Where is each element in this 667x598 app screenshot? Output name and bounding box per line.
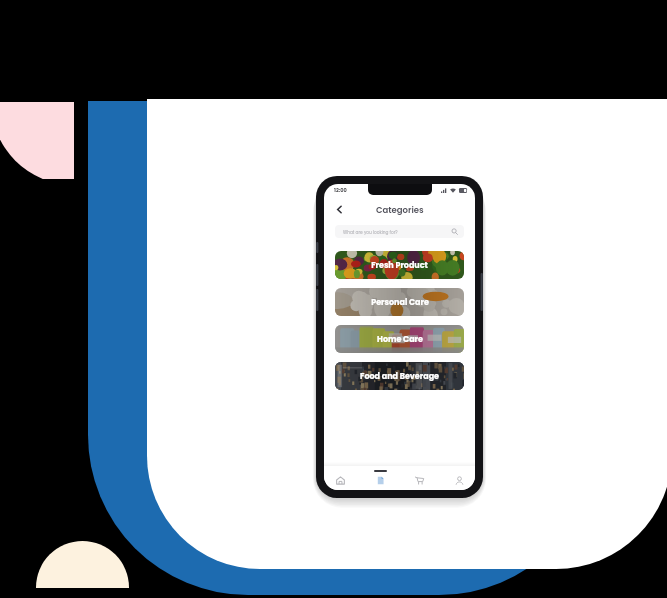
- staticText: 12:00: [334, 187, 347, 194]
- staticText: What are you looking for?: [343, 229, 398, 235]
- staticText: Home Care: [377, 334, 423, 345]
- staticText: Categories: [376, 204, 424, 216]
- button[interactable]: Orders: [369, 466, 391, 490]
- button[interactable]: Cart: [408, 466, 430, 490]
- button[interactable]: Profile: [448, 466, 470, 490]
- button[interactable]: Back: [333, 203, 346, 216]
- button[interactable]: Personal Care: [335, 288, 464, 316]
- button[interactable]: Food and Beverage: [335, 362, 464, 390]
- staticText: Food and Beverage: [360, 371, 439, 382]
- button[interactable]: What are you looking for?: [335, 225, 464, 238]
- staticText: Personal Care: [371, 297, 429, 308]
- button[interactable]: Home: [329, 466, 351, 490]
- button[interactable]: Fresh Product: [335, 251, 464, 279]
- staticText: Fresh Product: [371, 260, 428, 271]
- button[interactable]: Home Care: [335, 325, 464, 353]
